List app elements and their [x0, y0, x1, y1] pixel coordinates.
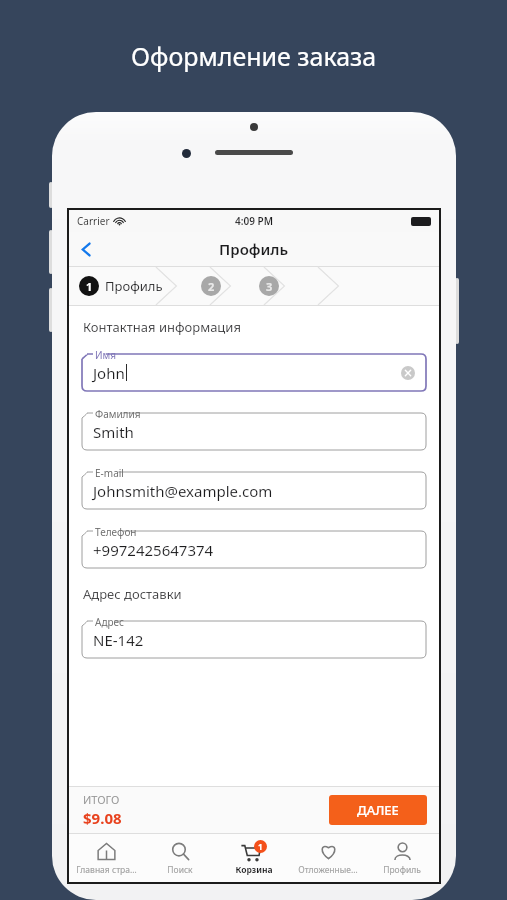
button[interactable]: Фамилия — [81, 406, 427, 451]
staticText: 2 — [208, 279, 215, 294]
staticText: Поиск — [167, 864, 193, 876]
staticText: ИТОГО — [83, 792, 120, 807]
staticText: Телефон — [95, 525, 137, 539]
staticText: Johnsmith@example.com — [93, 481, 273, 501]
staticText: Фамилия — [95, 407, 141, 421]
staticText: $9.08 — [83, 808, 122, 828]
button[interactable]: 1 — [217, 834, 291, 882]
staticText: Отложенные… — [298, 864, 358, 876]
button[interactable]: 3 — [259, 276, 279, 296]
staticText: +9972425647374 — [93, 540, 214, 560]
button[interactable]: Назад — [69, 232, 103, 266]
staticText: Профиль — [105, 277, 163, 295]
staticText: 3 — [266, 279, 273, 294]
button[interactable]: ДАЛЕЕ — [329, 795, 427, 825]
staticText: 1 — [86, 279, 93, 294]
staticText: NE-142 — [93, 630, 144, 650]
button[interactable]: Телефон — [81, 524, 427, 569]
staticText: Главная стра… — [76, 864, 137, 876]
button[interactable]: Адрес — [81, 614, 427, 659]
staticText: John — [93, 363, 125, 383]
staticText: E-mail — [95, 466, 124, 480]
staticText: Адрес — [95, 615, 124, 629]
staticText: Оформление заказа — [131, 39, 377, 73]
staticText: 1 — [258, 841, 263, 852]
button[interactable]: Отложенные… — [291, 834, 365, 882]
staticText: ДАЛЕЕ — [357, 801, 399, 819]
staticText: Профиль — [383, 864, 421, 876]
staticText: Carrier — [77, 214, 110, 228]
button[interactable]: 2 — [201, 276, 221, 296]
button[interactable]: E-mail — [81, 465, 427, 510]
staticText: Профиль — [219, 239, 289, 259]
staticText: Имя — [95, 348, 117, 362]
button[interactable]: Профиль — [365, 834, 439, 882]
staticText: Корзина — [235, 864, 273, 876]
button[interactable]: Очистить — [397, 362, 419, 384]
button[interactable]: 1 — [79, 276, 169, 296]
button[interactable]: Главная стра… — [69, 834, 143, 882]
staticText: Контактная информация — [83, 318, 241, 336]
staticText: Адрес доставки — [83, 585, 182, 603]
button[interactable]: Поиск — [143, 834, 217, 882]
staticText: 4:09 PM — [235, 214, 273, 228]
staticText: Smith — [93, 422, 134, 442]
button[interactable]: Имя — [81, 347, 427, 392]
